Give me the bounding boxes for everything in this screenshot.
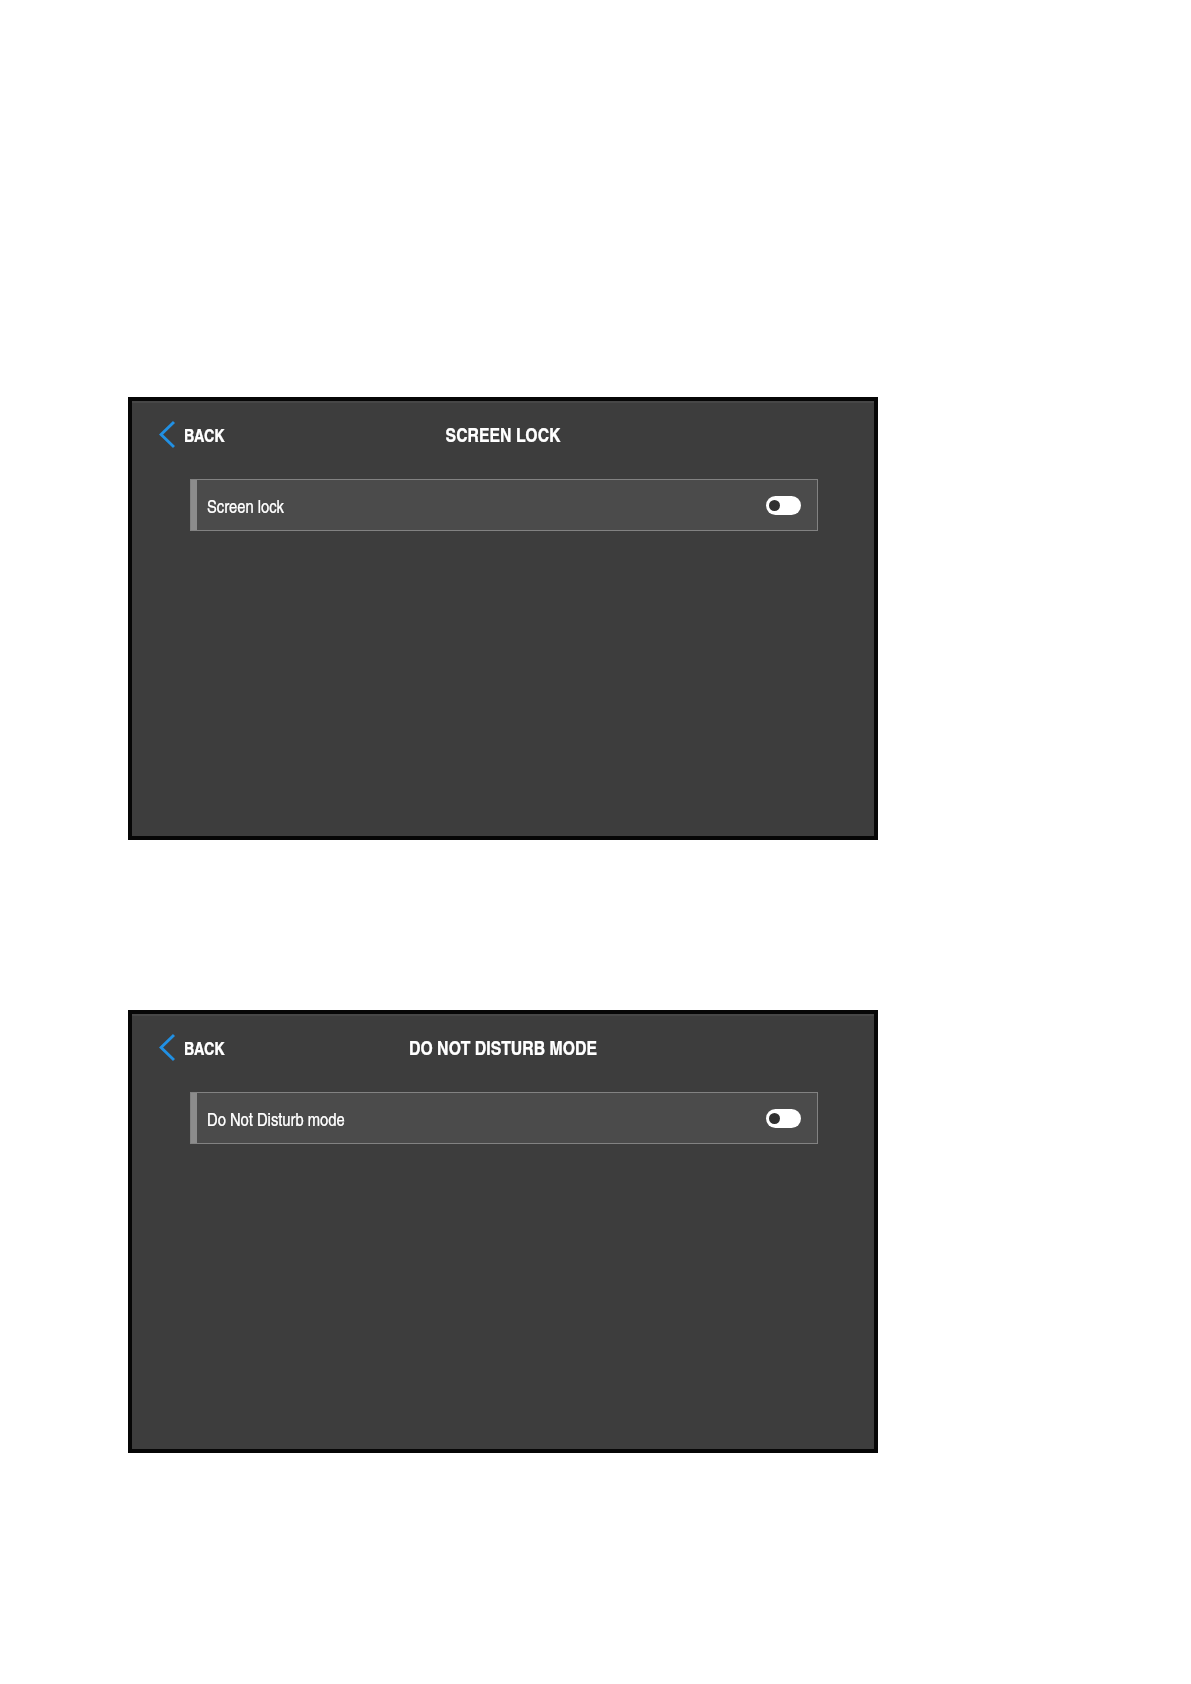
button[interactable]: Back bbox=[153, 1029, 231, 1066]
button[interactable]: Toggle Do Not Disturb mode bbox=[766, 1109, 801, 1128]
staticText: Do Not Disturb mode bbox=[207, 1106, 345, 1131]
staticText: BACK bbox=[184, 1036, 225, 1061]
button[interactable]: Screen lock bbox=[191, 480, 817, 530]
button[interactable]: Back bbox=[153, 416, 231, 453]
staticText: SCREEN LOCK bbox=[132, 421, 874, 448]
staticText: DO NOT DISTURB MODE bbox=[132, 1034, 874, 1061]
button[interactable]: Toggle Screen lock bbox=[766, 496, 801, 515]
button[interactable]: Do Not Disturb mode bbox=[191, 1093, 817, 1143]
staticText: Screen lock bbox=[207, 493, 284, 518]
staticText: BACK bbox=[184, 423, 225, 448]
